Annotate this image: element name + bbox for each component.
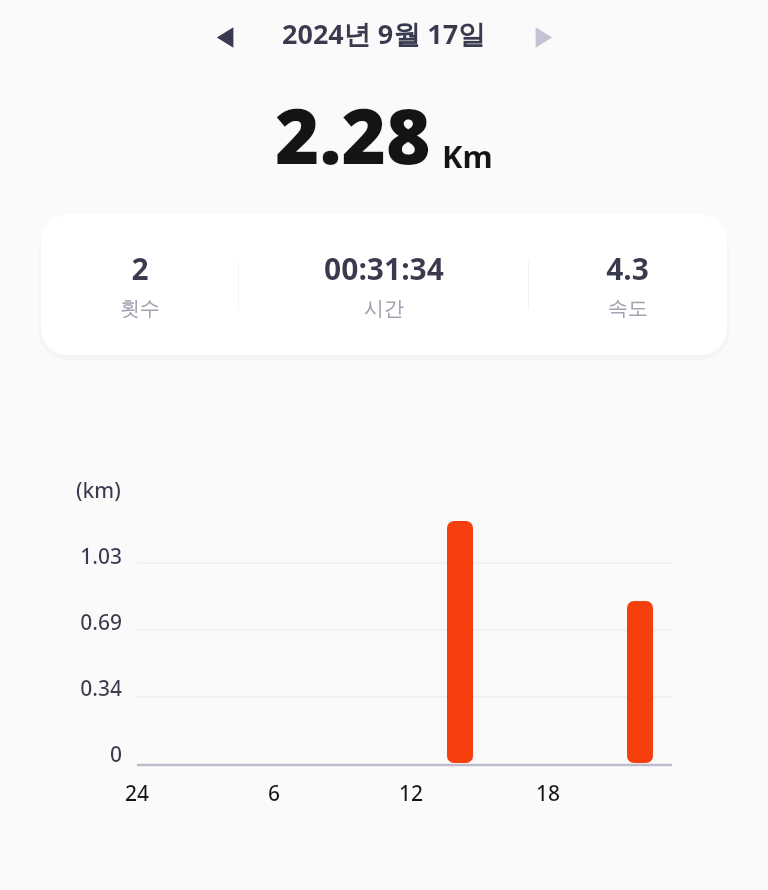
staticText: 시간 (364, 296, 404, 321)
staticText: 0 (42, 740, 122, 769)
staticText: 횟수 (120, 296, 160, 321)
staticText: 00:31:34 (324, 248, 444, 289)
button[interactable]: Next day (513, 8, 571, 66)
staticText: 1.03 (42, 542, 122, 571)
staticText: 12 (371, 779, 451, 808)
button[interactable]: 2 (41, 214, 727, 355)
button[interactable]: Previous day (197, 8, 255, 66)
staticText: 2024년 9월 17일 (282, 15, 486, 52)
staticText: 속도 (608, 296, 648, 321)
staticText: Km (442, 135, 493, 177)
staticText: 6 (234, 779, 314, 808)
staticText: 0.69 (42, 608, 122, 637)
staticText: (km) (76, 476, 121, 505)
staticText: 2.28 (275, 83, 431, 187)
staticText: 24 (97, 779, 177, 808)
staticText: 0.34 (42, 674, 122, 703)
staticText: 4.3 (606, 248, 649, 289)
staticText: 18 (508, 779, 588, 808)
staticText: 2 (131, 248, 149, 289)
